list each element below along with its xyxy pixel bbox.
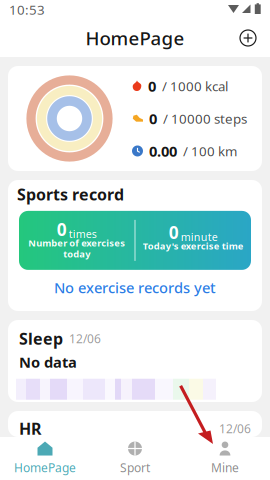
staticText: Sports record [17, 184, 124, 205]
button[interactable]: HomePage [0, 435, 90, 480]
staticText: No data [19, 352, 77, 372]
staticText: 12/06 [69, 331, 101, 347]
staticText: Sleep [19, 328, 63, 349]
staticText: / 1000 kcal [162, 77, 228, 95]
staticText: / 100 km [183, 142, 237, 160]
staticText: 0 [57, 218, 67, 241]
staticText: HR [19, 418, 41, 439]
staticText: / 10000 steps [163, 110, 247, 127]
button[interactable]: Sport [90, 435, 180, 480]
staticText: minute [181, 230, 218, 244]
staticText: 0 [149, 109, 157, 128]
staticText: 12/06 [219, 420, 251, 436]
staticText: Mine [211, 459, 239, 475]
staticText: Number of exercises [28, 237, 125, 249]
staticText: 0 [148, 76, 156, 96]
staticText: Today's exercise time [143, 240, 244, 252]
staticText: 10:53 [9, 1, 45, 18]
staticText: No exercise records yet [54, 278, 216, 297]
staticText: times [69, 227, 97, 241]
staticText: 0.00 [149, 141, 177, 161]
staticText: HomePage [14, 459, 76, 475]
staticText: HomePage [85, 26, 184, 50]
staticText: today [63, 248, 90, 260]
staticText: Sport [120, 459, 150, 475]
button[interactable]: Mine [180, 435, 270, 480]
button[interactable]: No exercise records yet [8, 270, 262, 308]
button[interactable]: Add [233, 23, 263, 53]
staticText: 0 [169, 221, 179, 244]
